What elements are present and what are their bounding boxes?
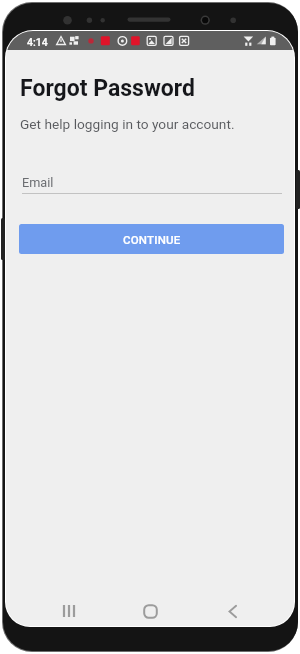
button[interactable]: Back [213, 596, 251, 626]
button[interactable]: Recent apps [50, 596, 88, 626]
button[interactable]: Home [131, 596, 169, 626]
staticText: Get help logging in to your account. [20, 116, 235, 132]
staticText: 4:14 [27, 36, 48, 48]
staticText: Forgot Password [20, 75, 196, 102]
button[interactable]: CONTINUE [19, 224, 284, 254]
staticText: Email [22, 175, 54, 190]
staticText: CONTINUE [123, 233, 181, 246]
button[interactable]: Email [22, 175, 282, 194]
